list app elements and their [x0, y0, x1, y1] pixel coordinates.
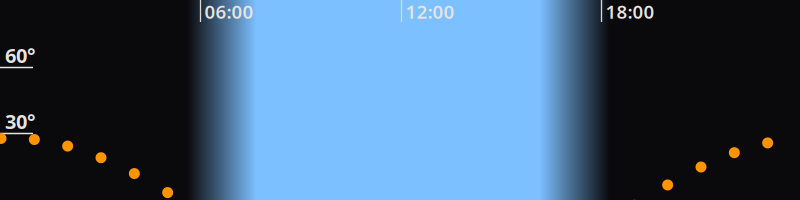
- staticText: 06:00: [204, 0, 253, 24]
- staticText: 12:00: [405, 0, 454, 24]
- staticText: 30°: [5, 108, 35, 135]
- staticText: 18:00: [605, 0, 654, 24]
- staticText: 60°: [5, 42, 35, 69]
